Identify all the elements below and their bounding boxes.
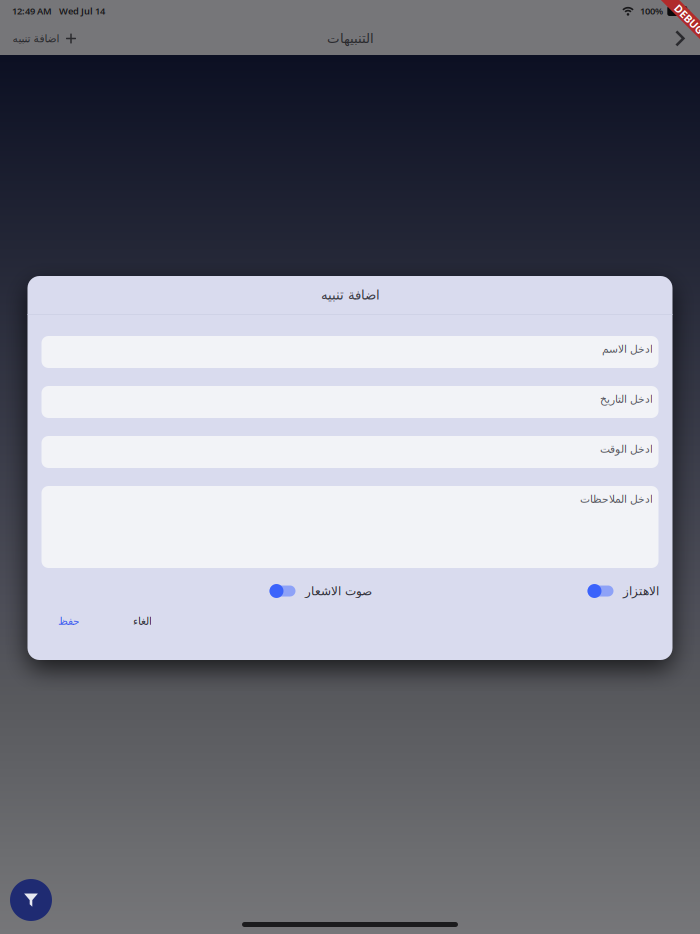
staticText: الاهتزاز — [622, 584, 658, 598]
staticText: Wed Jul 14 — [59, 5, 105, 17]
button[interactable]: اضافة تنبيه — [3, 22, 85, 55]
staticText: ادخل الملاحظات — [579, 493, 652, 505]
staticText: 12:49 AM — [12, 5, 52, 17]
button[interactable]: حفظ — [52, 611, 84, 631]
button[interactable]: Filter — [10, 879, 52, 921]
staticText: 100% — [640, 5, 663, 17]
staticText: الغاء — [132, 615, 151, 627]
staticText: اضافة تنبيه — [320, 287, 379, 302]
staticText: ادخل التاريخ — [599, 393, 652, 405]
staticText: صوت الاشعار — [304, 584, 371, 598]
staticText: اضافة تنبيه — [12, 32, 59, 44]
staticText: DEBUG — [662, 33, 699, 47]
staticText: ادخل الوقت — [599, 443, 652, 455]
staticText: التنبيهات — [326, 31, 373, 46]
button[interactable]: الغاء — [127, 611, 156, 631]
button[interactable]: Back — [663, 22, 697, 55]
staticText: ادخل الاسم — [601, 343, 652, 355]
staticText: حفظ — [57, 615, 79, 627]
